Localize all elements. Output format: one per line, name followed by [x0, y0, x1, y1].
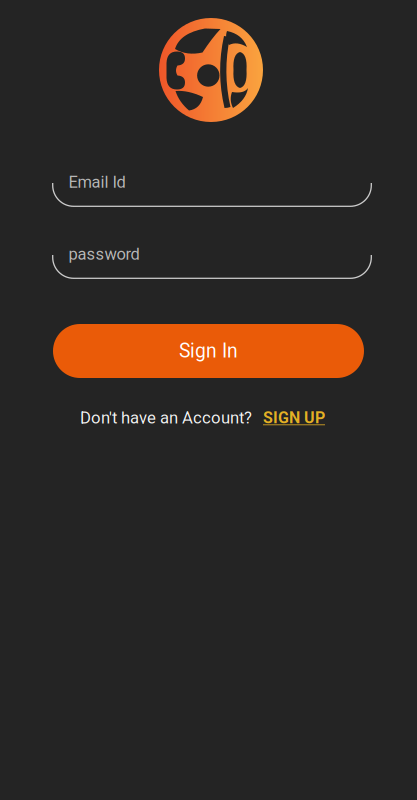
button[interactable]: SIGN UP — [252, 408, 325, 427]
staticText: Don't have an Account? — [80, 408, 252, 428]
staticText: password — [68, 244, 139, 264]
staticText: Email Id — [68, 172, 125, 192]
staticText: SIGN UP — [263, 408, 325, 427]
button[interactable]: Sign In — [53, 324, 364, 378]
staticText: Sign In — [179, 340, 238, 362]
